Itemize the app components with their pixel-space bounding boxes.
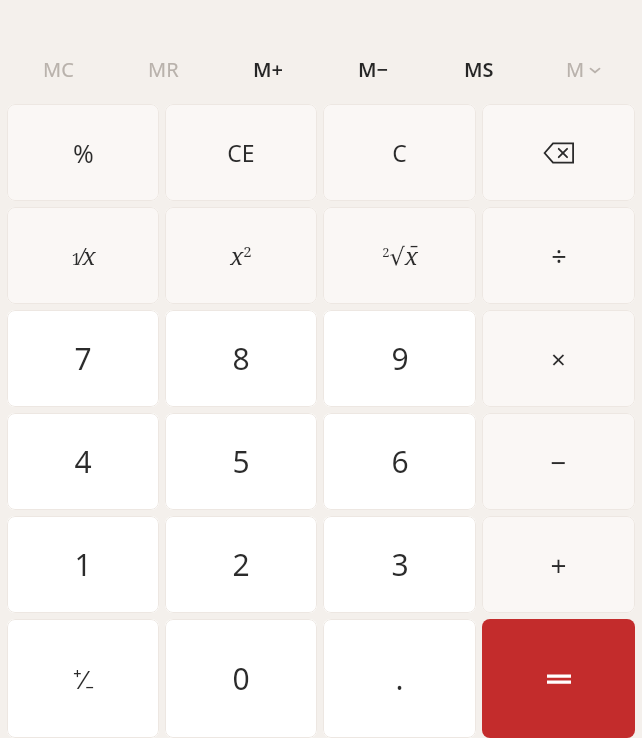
- button[interactable]: M: [531, 48, 636, 90]
- button[interactable]: .: [323, 619, 476, 738]
- staticText: M: [566, 56, 585, 83]
- staticText: 0: [232, 658, 250, 699]
- button[interactable]: C: [323, 104, 476, 201]
- staticText: ×: [551, 341, 566, 376]
- staticText: MC: [43, 56, 74, 83]
- staticText: ÷: [551, 237, 567, 274]
- button[interactable]: ×: [482, 310, 635, 407]
- button[interactable]: MR: [111, 48, 216, 90]
- staticText: +: [550, 546, 567, 584]
- staticText: 7: [74, 338, 92, 379]
- button[interactable]: Equals: [482, 619, 635, 738]
- staticText: M+: [253, 56, 284, 83]
- button[interactable]: 1: [7, 516, 159, 613]
- button[interactable]: MS: [426, 48, 531, 90]
- button[interactable]: ⁺⁄₋: [7, 619, 159, 738]
- button[interactable]: M−: [321, 48, 426, 90]
- staticText: 1⁄x: [71, 239, 96, 272]
- button[interactable]: 3: [323, 516, 476, 613]
- button[interactable]: 8: [165, 310, 317, 407]
- staticText: .: [395, 658, 404, 699]
- button[interactable]: −: [482, 413, 635, 510]
- staticText: M−: [358, 56, 389, 83]
- staticText: MS: [464, 56, 494, 83]
- button[interactable]: x2: [165, 207, 317, 304]
- staticText: 2√x̅: [382, 239, 418, 272]
- button[interactable]: 2: [165, 516, 317, 613]
- button[interactable]: 0: [165, 619, 317, 738]
- staticText: 1: [74, 544, 92, 585]
- button[interactable]: ÷: [482, 207, 635, 304]
- staticText: 4: [74, 441, 92, 482]
- button[interactable]: 7: [7, 310, 159, 407]
- button[interactable]: 5: [165, 413, 317, 510]
- staticText: 2: [232, 544, 250, 585]
- staticText: 9: [391, 338, 409, 379]
- button[interactable]: Backspace: [482, 104, 635, 201]
- staticText: x2: [230, 239, 252, 272]
- staticText: 8: [232, 338, 250, 379]
- button[interactable]: 9: [323, 310, 476, 407]
- staticText: C: [392, 137, 407, 168]
- button[interactable]: MC: [6, 48, 111, 90]
- staticText: 5: [232, 441, 250, 482]
- button[interactable]: CE: [165, 104, 317, 201]
- staticText: ⁺⁄₋: [73, 661, 94, 696]
- button[interactable]: 1⁄x: [7, 207, 159, 304]
- button[interactable]: +: [482, 516, 635, 613]
- staticText: %: [73, 136, 94, 170]
- button[interactable]: 6: [323, 413, 476, 510]
- button[interactable]: 4: [7, 413, 159, 510]
- staticText: 3: [391, 544, 409, 585]
- button[interactable]: %: [7, 104, 159, 201]
- button[interactable]: M+: [216, 48, 321, 90]
- staticText: MR: [148, 56, 179, 83]
- staticText: CE: [227, 137, 255, 168]
- button[interactable]: 2√x̅: [323, 207, 476, 304]
- staticText: −: [550, 443, 567, 481]
- staticText: 6: [391, 441, 409, 482]
